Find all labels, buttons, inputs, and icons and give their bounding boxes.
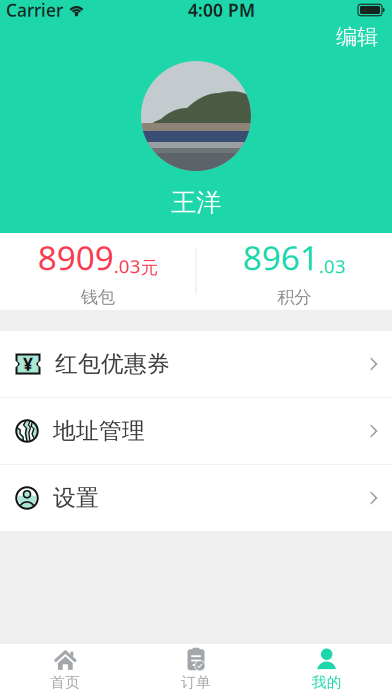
button[interactable]: 编辑 [322,17,392,57]
button[interactable]: ¥ [0,331,392,397]
staticText: Carrier [6,0,63,21]
staticText: 钱包 [81,286,115,308]
button[interactable]: 地址管理 [0,398,392,464]
staticText: 首页 [50,673,80,691]
staticText: 8909 [38,235,114,279]
staticText: 8961 [243,235,319,279]
staticText: .03 [319,254,346,278]
staticText: 编辑 [336,24,378,50]
button[interactable]: 订单 [131,644,261,696]
staticText: 积分 [277,286,311,308]
button[interactable]: 首页 [0,644,131,696]
button[interactable]: 设置 [0,465,392,531]
button[interactable]: 8961 [196,233,392,310]
staticText: ¥ [23,352,33,375]
button[interactable]: 8909 [0,233,195,310]
staticText: 地址管理 [53,417,145,445]
staticText: .03 [114,254,141,278]
staticText: 4:00 PM [188,0,255,21]
staticText: 设置 [53,484,99,512]
staticText: 王洋 [171,187,221,218]
staticText: 元 [141,257,158,278]
staticText: 订单 [181,673,211,691]
staticText: 我的 [312,673,342,691]
staticText: 红包优惠券 [55,350,170,378]
button[interactable]: 我的 [261,644,392,696]
